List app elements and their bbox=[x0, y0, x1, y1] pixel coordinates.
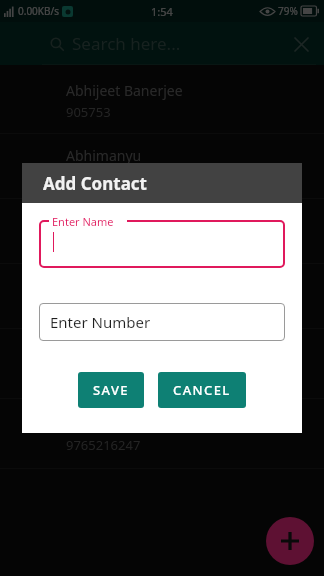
staticText: SAVE bbox=[93, 381, 129, 399]
button[interactable]: Aditya bbox=[0, 264, 324, 329]
staticText: Enter Name bbox=[52, 214, 114, 229]
staticText: Abhijeet Banerjee bbox=[66, 81, 183, 100]
staticText: Abhishek bbox=[66, 211, 127, 230]
button[interactable]: SAVE bbox=[78, 372, 144, 408]
staticText: 1:54 bbox=[151, 4, 173, 19]
button[interactable]: Close search bbox=[290, 33, 312, 55]
button[interactable]: Add contact bbox=[266, 517, 314, 565]
staticText: 0.00KB/s bbox=[18, 4, 60, 18]
button[interactable]: Enter Number bbox=[39, 303, 285, 341]
staticText: Add Contact bbox=[43, 172, 147, 195]
staticText: 905753 bbox=[66, 103, 111, 121]
button[interactable]: Abhijeet Banerjee bbox=[0, 69, 324, 134]
button[interactable] bbox=[39, 220, 285, 268]
staticText: CANCEL bbox=[173, 381, 231, 399]
button[interactable]: Abhishek bbox=[0, 199, 324, 264]
staticText: Abhimanyu bbox=[66, 146, 142, 165]
staticText: Enter Number bbox=[50, 312, 151, 332]
staticText: 9011223344 bbox=[66, 298, 141, 316]
staticText: *400# bbox=[66, 366, 104, 384]
staticText: 9765216247 bbox=[66, 436, 141, 454]
staticText: 9730051213 bbox=[66, 168, 141, 186]
button[interactable]: CANCEL bbox=[158, 372, 246, 408]
button[interactable]: Ajay bbox=[0, 399, 324, 469]
button[interactable]: Airtel Money bbox=[0, 329, 324, 399]
button[interactable]: Abhimanyu bbox=[0, 134, 324, 199]
staticText: Search here... bbox=[72, 32, 290, 55]
staticText: 79% bbox=[278, 4, 298, 18]
